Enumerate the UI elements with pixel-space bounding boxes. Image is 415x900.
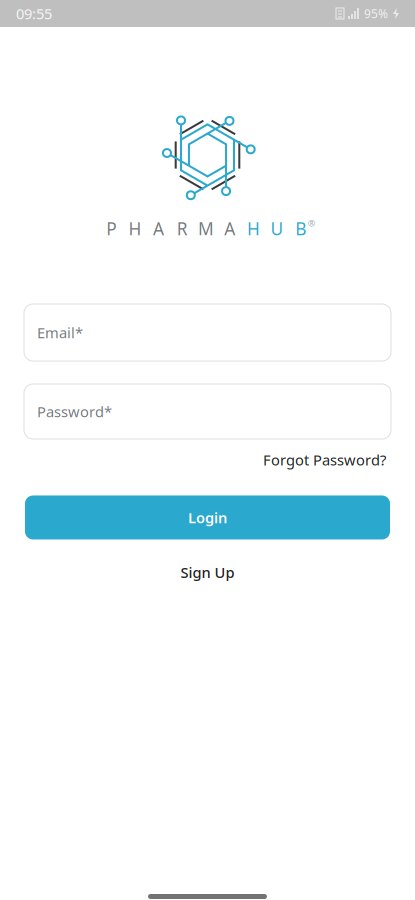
staticText: H <box>128 217 141 240</box>
button[interactable]: Email* <box>24 304 391 361</box>
staticText: P <box>106 217 116 240</box>
staticText: ® <box>308 217 316 229</box>
staticText: Email* <box>37 323 83 342</box>
button[interactable]: Login <box>0 495 415 539</box>
staticText: Forgot Password? <box>263 450 386 469</box>
staticText: A <box>224 217 235 240</box>
button[interactable]: Sign Up <box>164 539 250 588</box>
staticText: 09:55 <box>16 4 52 23</box>
button[interactable]: Forgot Password? <box>0 439 415 473</box>
staticText: 95% <box>364 5 388 21</box>
staticText: U <box>271 217 284 240</box>
staticText: H <box>247 217 260 240</box>
staticText: B <box>295 217 306 240</box>
staticText: Login <box>188 508 227 527</box>
staticText: Sign Up <box>180 562 234 582</box>
button[interactable]: Password* <box>24 384 391 439</box>
staticText: A <box>153 217 164 240</box>
staticText: Password* <box>37 402 112 421</box>
staticText: R <box>177 217 188 240</box>
staticText: M <box>198 217 214 240</box>
